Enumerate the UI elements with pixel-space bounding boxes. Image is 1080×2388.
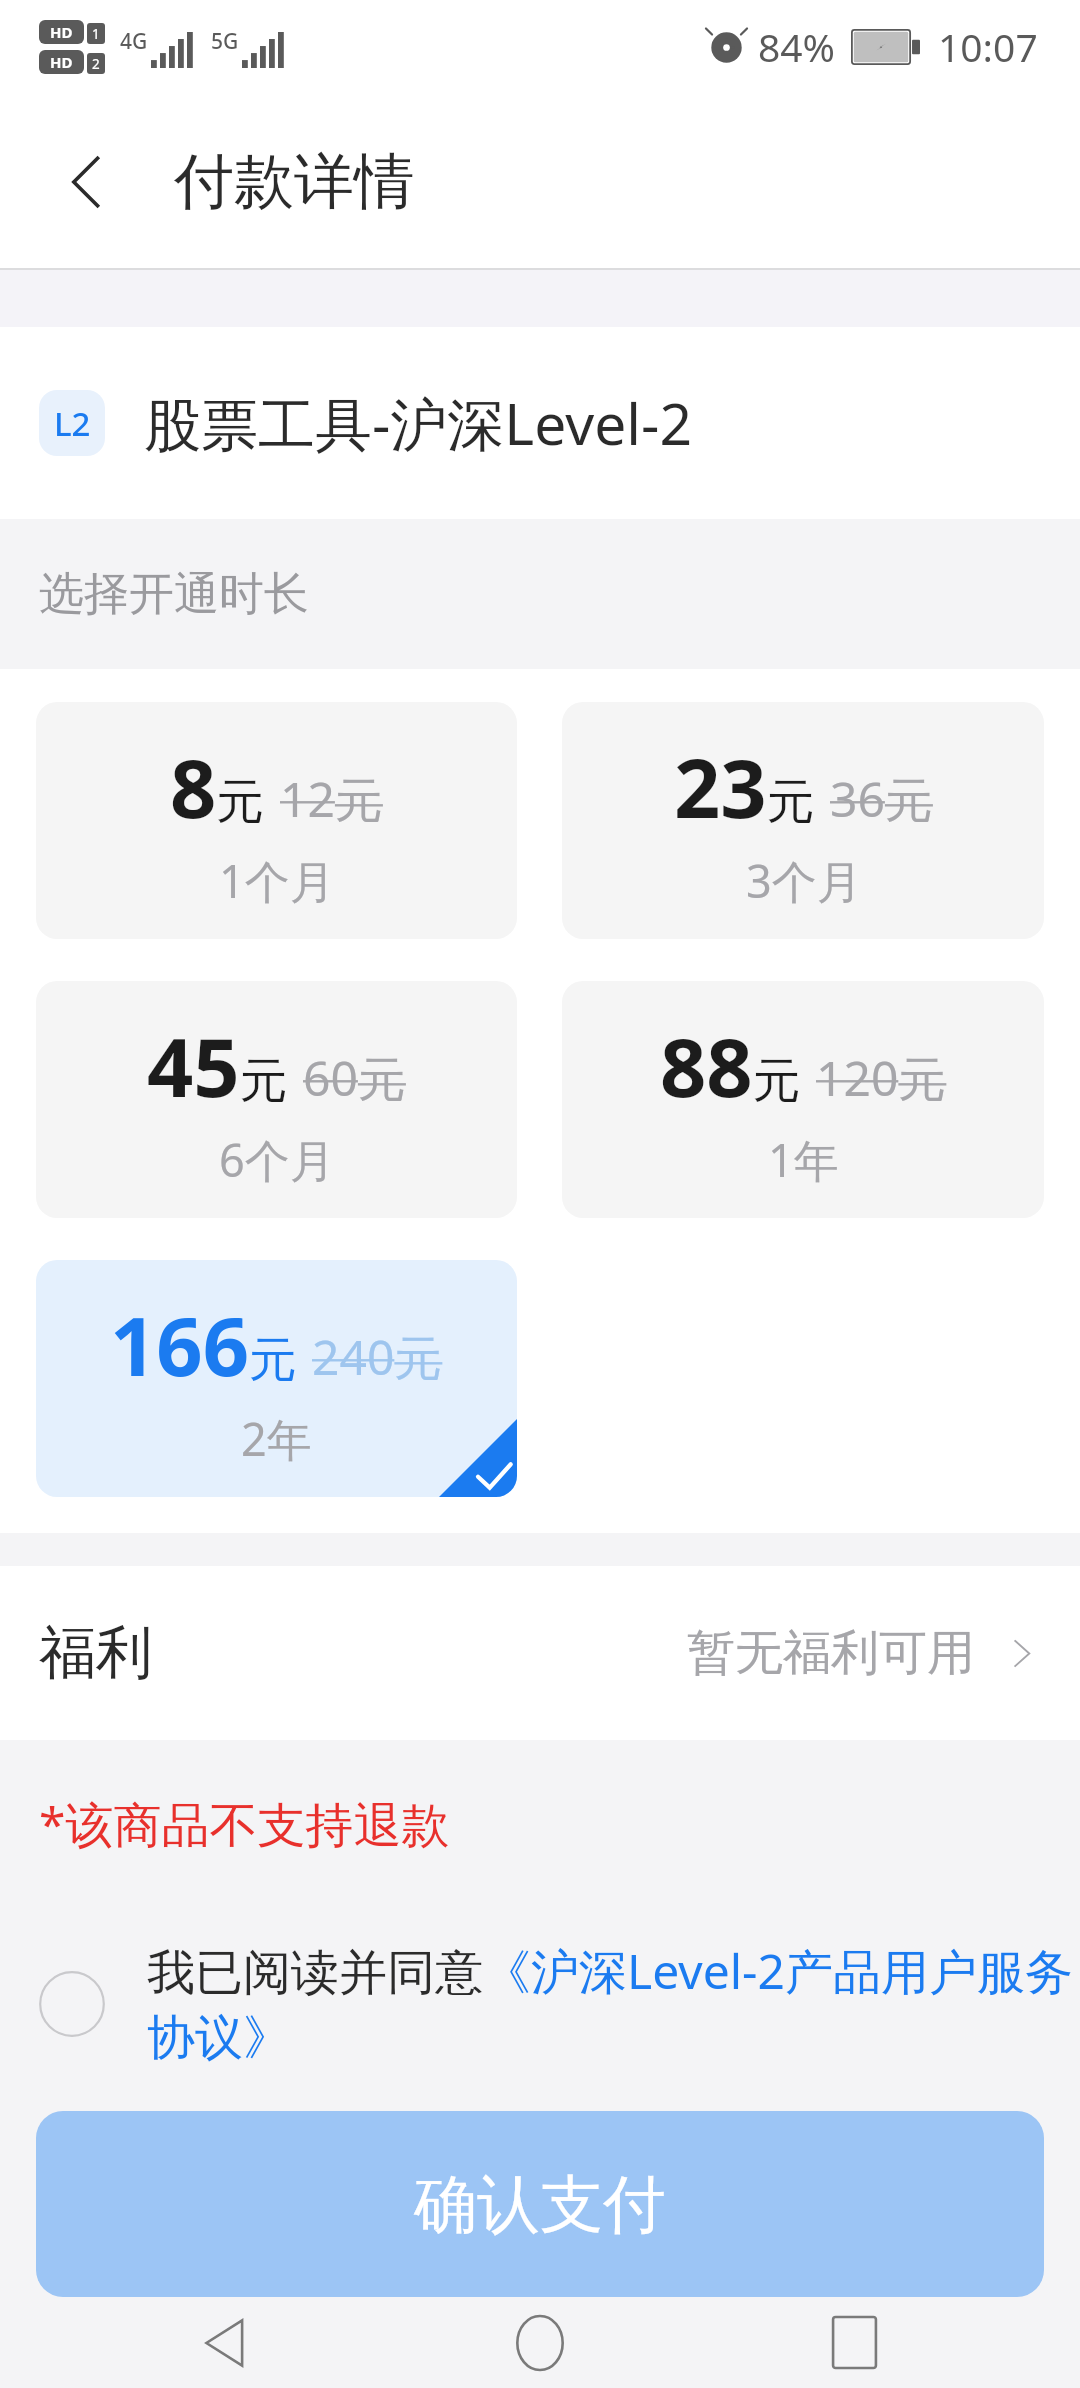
staticText: 240元 bbox=[312, 1324, 443, 1390]
staticText: 2年 bbox=[241, 1408, 312, 1469]
staticText: 3个月 bbox=[746, 850, 862, 911]
staticText: HD bbox=[50, 52, 73, 72]
staticText: *该商品不支持退款 bbox=[39, 1791, 450, 1857]
staticText: 120元 bbox=[816, 1045, 947, 1111]
staticText: 8元 bbox=[170, 731, 265, 841]
button[interactable]: 45元 bbox=[36, 981, 517, 1218]
button[interactable]: 23元 bbox=[562, 702, 1044, 939]
button[interactable]: Home bbox=[453, 2297, 627, 2388]
staticText: 84% bbox=[758, 20, 836, 73]
staticText: 福利 bbox=[39, 1617, 153, 1689]
button[interactable]: Back bbox=[140, 2297, 314, 2388]
staticText: 暂无福利可用 bbox=[687, 1623, 975, 1683]
staticText: 23元 bbox=[674, 731, 815, 841]
staticText: 1 bbox=[92, 25, 100, 43]
staticText: 6个月 bbox=[219, 1129, 335, 1190]
staticText: 88元 bbox=[660, 1010, 801, 1120]
staticText: 2 bbox=[92, 55, 100, 73]
button[interactable]: 8元 bbox=[36, 702, 517, 939]
button[interactable]: Recents bbox=[767, 2297, 941, 2388]
staticText: 166元 bbox=[110, 1289, 297, 1399]
button[interactable]: 返回 bbox=[0, 95, 174, 269]
staticText: L2 bbox=[54, 401, 91, 446]
staticText: 1个月 bbox=[219, 850, 335, 911]
button[interactable]: 确认支付 bbox=[36, 2111, 1044, 2297]
staticText: 36元 bbox=[830, 766, 933, 832]
button[interactable]: 166元 bbox=[36, 1260, 517, 1497]
staticText: 付款详情 bbox=[174, 144, 414, 220]
staticText: 确认支付 bbox=[414, 2165, 666, 2244]
staticText: 4G bbox=[120, 27, 148, 56]
button[interactable]: 福利 bbox=[0, 1566, 1080, 1740]
staticText: 选择开通时长 bbox=[39, 566, 309, 623]
staticText: 1年 bbox=[768, 1129, 839, 1190]
button[interactable]: 我已阅读并同意《沪深Level-2产品用户服务协议》 bbox=[0, 1938, 1080, 2069]
staticText: 45元 bbox=[147, 1010, 288, 1120]
staticText: 60元 bbox=[303, 1045, 406, 1111]
staticText: 我已阅读并同意《沪深Level-2产品用户服务协议》 bbox=[147, 1938, 1080, 2069]
staticText: HD bbox=[50, 22, 73, 42]
button[interactable]: 88元 bbox=[562, 981, 1044, 1218]
staticText: 股票工具-沪深Level-2 bbox=[144, 384, 692, 462]
staticText: 10:07 bbox=[938, 20, 1038, 73]
staticText: 12元 bbox=[280, 766, 383, 832]
staticText: 5G bbox=[211, 27, 239, 56]
